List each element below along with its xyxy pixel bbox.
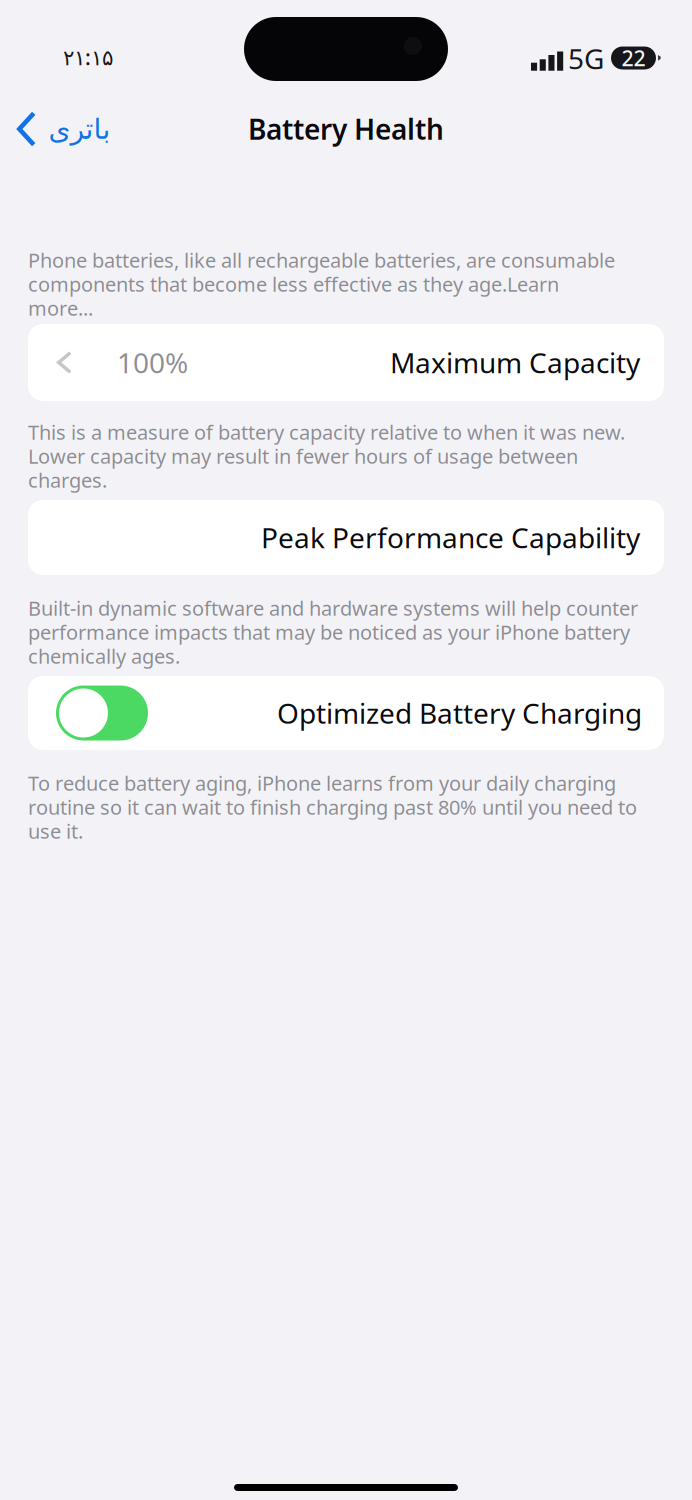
button[interactable]: 100% (0, 324, 692, 401)
staticText: performance impacts that may be noticed … (28, 619, 630, 645)
staticText: charges. (28, 467, 107, 493)
staticText: more... (28, 295, 93, 321)
staticText: Phone batteries, like all rechargeable b… (28, 247, 615, 273)
button[interactable]: Back to Battery (0, 100, 110, 158)
staticText: use it. (28, 818, 83, 844)
staticText: components that become less effective as… (28, 271, 559, 297)
staticText: 100% (117, 344, 188, 381)
staticText: ۲۱:۱۵ (63, 43, 113, 71)
button[interactable]: Peak Performance Capability (0, 500, 692, 575)
staticText: 22 (621, 44, 645, 72)
staticText: 5G (568, 40, 604, 77)
staticText: Optimized Battery Charging (277, 694, 642, 732)
staticText: Maximum Capacity (390, 344, 640, 381)
staticText: Built-in dynamic software and hardware s… (28, 595, 638, 621)
staticText: Battery Health (248, 110, 444, 148)
staticText: Peak Performance Capability (261, 519, 640, 556)
staticText: This is a measure of battery capacity re… (28, 419, 625, 445)
staticText: routine so it can wait to finish chargin… (28, 794, 637, 820)
button[interactable]: Optimized Battery Charging, on (56, 685, 148, 740)
staticText: باتری (48, 113, 110, 145)
staticText: Lower capacity may result in fewer hours… (28, 443, 578, 469)
staticText: To reduce battery aging, iPhone learns f… (28, 770, 616, 796)
staticText: chemically ages. (28, 643, 180, 669)
